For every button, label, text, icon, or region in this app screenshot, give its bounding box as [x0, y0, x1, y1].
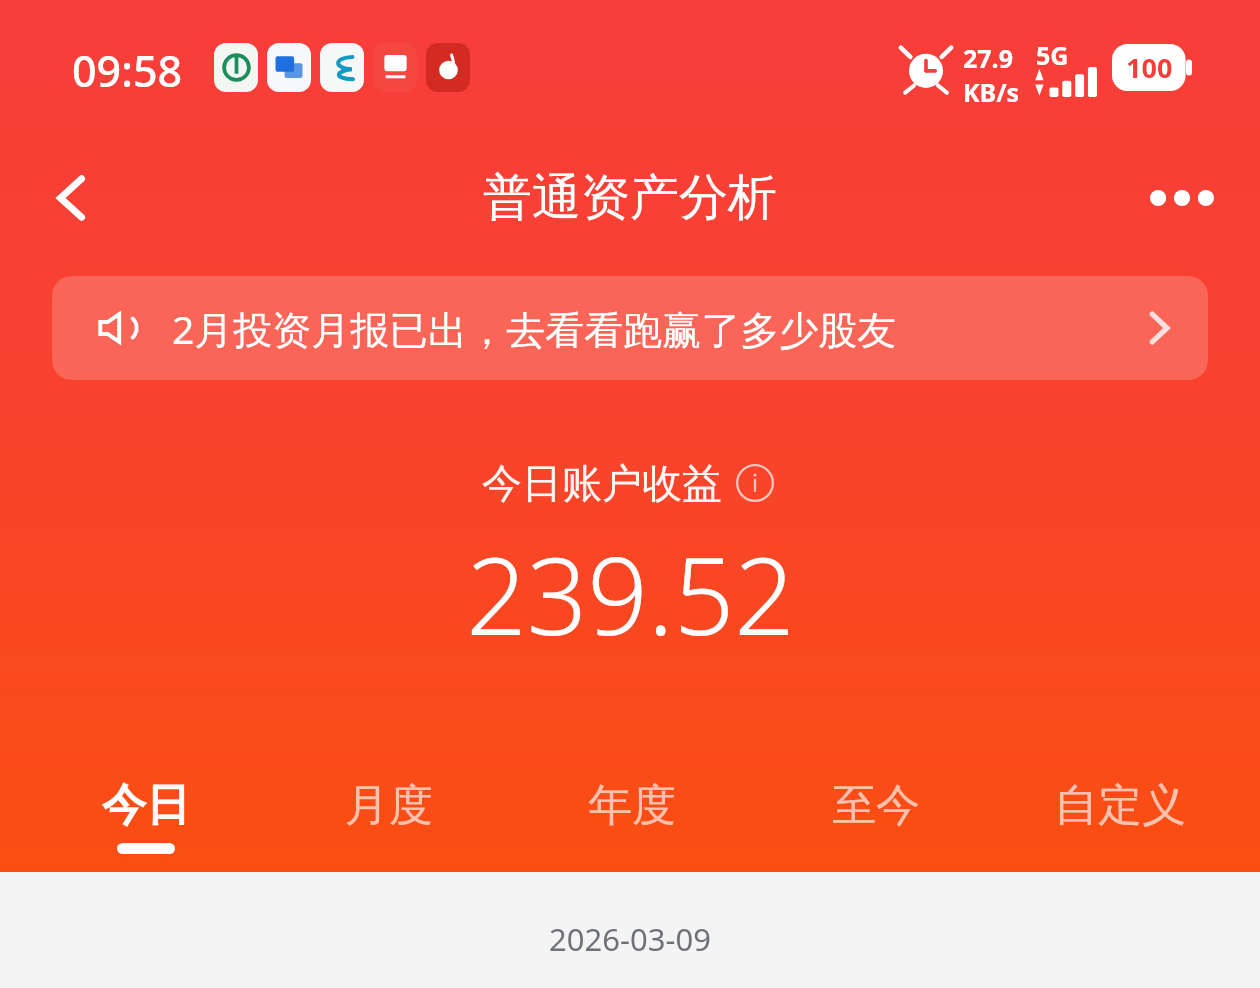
staticText: 普通资产分析 [483, 167, 777, 229]
staticText: 5G [1036, 38, 1069, 72]
staticText: 100 [1126, 49, 1173, 86]
button[interactable]: 至今 [754, 778, 998, 872]
button[interactable]: 月度 [267, 778, 510, 872]
button[interactable]: More options [1126, 154, 1238, 242]
button[interactable]: Back [28, 154, 116, 242]
staticText: 09:58 [72, 41, 183, 100]
staticText: 自定义 [1054, 778, 1186, 833]
staticText: 今日 [102, 778, 190, 833]
button[interactable]: 年度 [510, 778, 754, 872]
button[interactable]: 自定义 [998, 778, 1242, 872]
staticText: 2月投资月报已出，去看看跑赢了多少股友 [172, 302, 1138, 355]
staticText: 年度 [588, 778, 676, 833]
staticText: 至今 [832, 778, 920, 833]
staticText: 今日账户收益 [482, 458, 722, 508]
button[interactable]: 今日 [24, 778, 267, 872]
staticText: 239.52 [466, 522, 795, 666]
staticText: KB/s [963, 75, 1020, 109]
staticText: 27.9 [963, 41, 1013, 75]
staticText: 2026-03-09 [549, 918, 711, 960]
button[interactable]: 2月投资月报已出，去看看跑赢了多少股友 [52, 276, 1208, 380]
button[interactable]: Info [732, 460, 778, 506]
staticText: 月度 [345, 778, 433, 833]
